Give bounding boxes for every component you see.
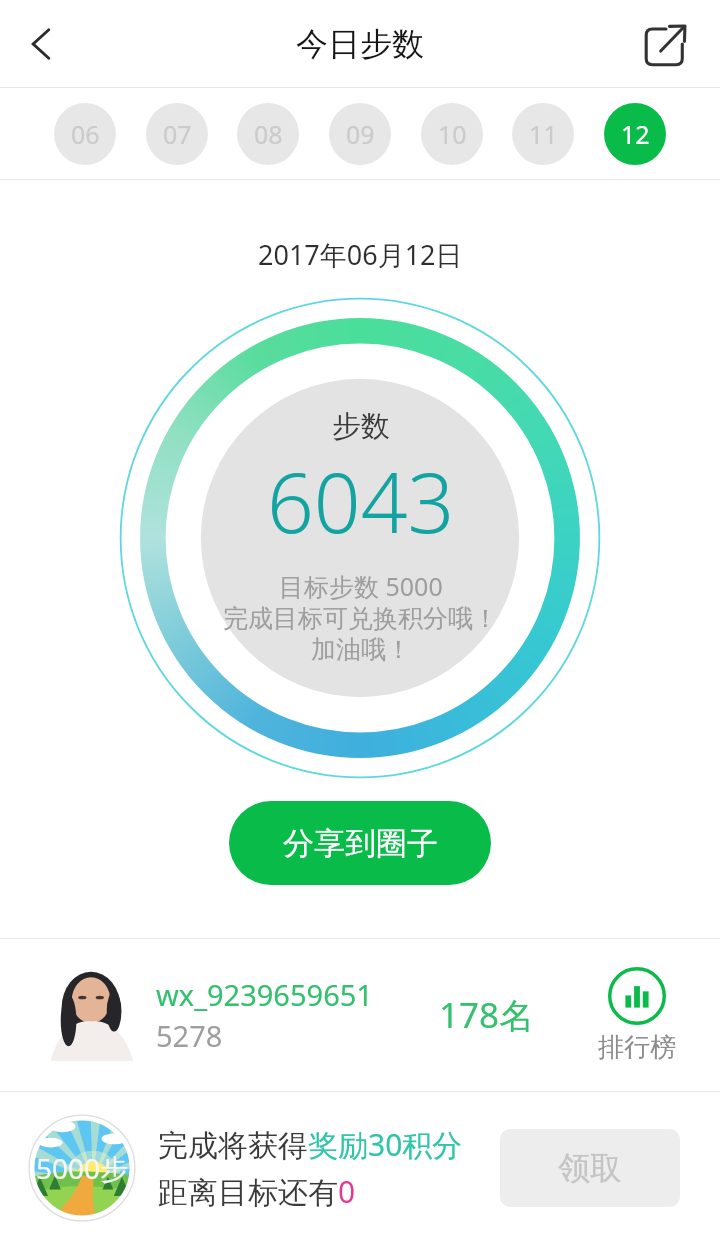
staticText: 6043: [267, 445, 455, 557]
staticText: 09: [346, 117, 375, 151]
staticText: 领取: [558, 1148, 622, 1188]
button[interactable]: wx_9239659651: [0, 939, 720, 1091]
button[interactable]: 08: [237, 103, 299, 165]
staticText: 目标步数 5000: [279, 569, 443, 603]
staticText: 2017年06月12日: [258, 236, 463, 273]
staticText: 加油哦！: [311, 634, 411, 665]
button[interactable]: 09: [329, 103, 391, 165]
staticText: 06: [71, 117, 100, 151]
button[interactable]: Back: [4, 6, 80, 82]
staticText: 11: [529, 117, 558, 151]
staticText: 07: [163, 117, 192, 151]
staticText: 距离目标还有0: [158, 1171, 356, 1212]
button[interactable]: 分享到圈子: [229, 801, 491, 885]
staticText: 5000步: [36, 1149, 129, 1187]
staticText: 完成目标可兑换积分哦！: [223, 603, 498, 634]
button[interactable]: 07: [146, 103, 208, 165]
staticText: 08: [254, 117, 283, 151]
button[interactable]: 领取: [500, 1129, 680, 1207]
staticText: 12: [621, 117, 650, 151]
button[interactable]: 12: [604, 103, 666, 165]
button[interactable]: Share: [628, 6, 704, 82]
staticText: 今日步数: [296, 24, 424, 64]
staticText: 10: [438, 117, 467, 151]
staticText: 分享到圈子: [283, 824, 438, 863]
staticText: 排行榜: [598, 1031, 676, 1064]
staticText: 5278: [156, 1016, 223, 1055]
button[interactable]: 06: [54, 103, 116, 165]
staticText: wx_9239659651: [156, 975, 373, 1014]
button[interactable]: 11: [512, 103, 574, 165]
button[interactable]: 10: [421, 103, 483, 165]
button[interactable]: 排行榜: [598, 967, 676, 1064]
staticText: 178名: [439, 991, 535, 1039]
staticText: 完成将获得奖励30积分: [158, 1124, 463, 1165]
staticText: 步数: [332, 408, 390, 445]
